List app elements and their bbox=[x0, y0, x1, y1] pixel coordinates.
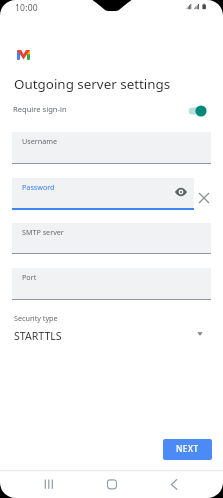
staticText: Password bbox=[22, 182, 55, 192]
staticText: STARTTLS bbox=[14, 329, 62, 343]
button[interactable]: Port bbox=[12, 268, 211, 300]
staticText: 10:00 bbox=[15, 2, 38, 14]
button[interactable]: Back bbox=[166, 470, 182, 498]
button[interactable]: Recents bbox=[41, 470, 57, 498]
button[interactable]: Home bbox=[104, 470, 120, 498]
button[interactable]: Security type dropdown bbox=[191, 325, 209, 343]
button[interactable]: Username bbox=[12, 132, 211, 164]
button[interactable]: Security type bbox=[12, 312, 211, 344]
button[interactable]: Show password bbox=[173, 184, 189, 200]
other: Require sign-in toggle bbox=[186, 103, 208, 119]
button[interactable]: SMTP server bbox=[12, 223, 211, 254]
staticText: NEXT bbox=[176, 443, 199, 454]
button[interactable]: NEXT bbox=[163, 439, 212, 460]
staticText: SMTP server bbox=[22, 227, 64, 237]
button[interactable]: Require sign-in bbox=[0, 100, 223, 122]
staticText: Require sign-in bbox=[13, 104, 67, 114]
staticText: Username bbox=[22, 136, 57, 146]
staticText: Security type bbox=[14, 313, 58, 323]
button[interactable]: Password bbox=[12, 178, 194, 210]
button[interactable]: Clear bbox=[196, 190, 212, 206]
staticText: Port bbox=[22, 272, 37, 282]
staticText: Outgoing server settings bbox=[14, 75, 171, 93]
